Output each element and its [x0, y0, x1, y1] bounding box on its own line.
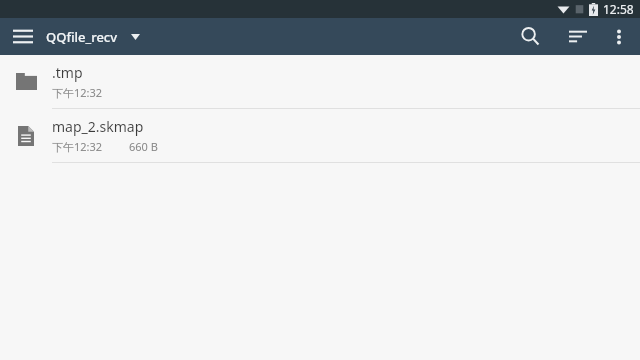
- staticText: 下午12:32: [52, 85, 103, 100]
- button[interactable]: Sort: [554, 18, 602, 55]
- button[interactable]: Open navigation drawer: [0, 18, 46, 55]
- button[interactable]: More options: [602, 18, 636, 55]
- staticText: 660 B: [129, 139, 158, 154]
- staticText: .tmp: [52, 63, 83, 82]
- staticText: 下午12:32: [52, 139, 103, 154]
- staticText: 12:58: [603, 1, 634, 17]
- staticText: QQfile_recv: [46, 28, 118, 46]
- staticText: map_2.skmap: [52, 117, 144, 136]
- button[interactable]: Search: [506, 18, 554, 55]
- button[interactable]: QQfile_recv: [46, 18, 148, 55]
- button[interactable]: .tmp: [0, 55, 640, 108]
- button[interactable]: map_2.skmap: [0, 109, 640, 162]
